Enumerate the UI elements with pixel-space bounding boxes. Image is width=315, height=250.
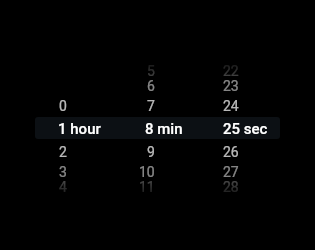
staticText: 0 (59, 98, 67, 114)
button[interactable]: Seconds 26 (198, 141, 280, 163)
button[interactable]: Seconds 23 (198, 74, 280, 96)
staticText: 10 (139, 164, 155, 180)
button[interactable]: Seconds 27 (198, 161, 280, 183)
staticText: 2 (59, 144, 67, 160)
staticText: 22 (223, 63, 239, 79)
button[interactable]: Minutes 9 (116, 141, 198, 163)
button[interactable]: Hours 4 (35, 176, 117, 198)
button[interactable]: Hours 1 (35, 118, 117, 140)
button[interactable]: Seconds 28 (198, 176, 280, 198)
staticText: 4 (59, 179, 67, 195)
staticText: 9 (147, 144, 155, 160)
staticText: 1 hour (58, 120, 101, 138)
button[interactable]: Hours 2 (35, 141, 117, 163)
button[interactable]: Minutes 6 (116, 74, 198, 96)
button[interactable]: Hours 3 (35, 161, 117, 183)
button[interactable]: Minutes 11 (116, 176, 198, 198)
button[interactable]: Minutes 8 (116, 118, 198, 140)
button[interactable]: Seconds 25 (198, 118, 280, 140)
button[interactable]: Seconds 24 (198, 95, 280, 117)
button[interactable]: Hours 0 (35, 95, 117, 117)
staticText: 3 (59, 164, 67, 180)
staticText: 24 (223, 98, 239, 114)
button[interactable]: Minutes 10 (116, 161, 198, 183)
staticText: 27 (223, 164, 239, 180)
staticText: 5 (147, 63, 155, 79)
staticText: 6 (147, 78, 155, 94)
staticText: 7 (147, 98, 155, 114)
staticText: 25 sec (223, 120, 268, 138)
staticText: 28 (223, 179, 239, 195)
staticText: 26 (223, 144, 239, 160)
staticText: 11 (139, 179, 155, 195)
button[interactable]: Minutes 7 (116, 95, 198, 117)
staticText: 23 (223, 78, 239, 94)
staticText: 8 min (145, 120, 183, 138)
button[interactable]: Minutes 5 (116, 60, 198, 82)
button[interactable]: Seconds 22 (198, 60, 280, 82)
